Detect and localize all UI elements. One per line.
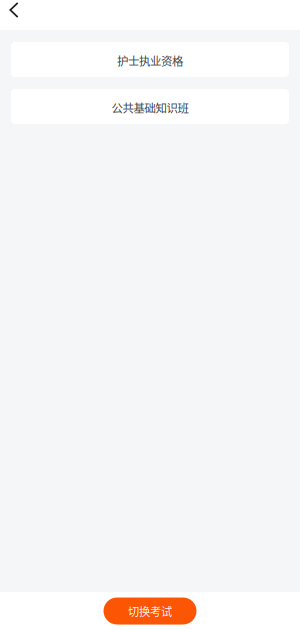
staticText: 护士执业资格 xyxy=(117,52,183,69)
button[interactable]: 切换考试 xyxy=(103,597,196,624)
button[interactable]: 护士执业资格 xyxy=(11,42,289,77)
button[interactable]: 公共基础知识班 xyxy=(11,89,289,124)
staticText: 公共基础知识班 xyxy=(111,99,188,116)
button[interactable]: Back xyxy=(0,0,28,20)
staticText: 切换考试 xyxy=(128,603,172,619)
